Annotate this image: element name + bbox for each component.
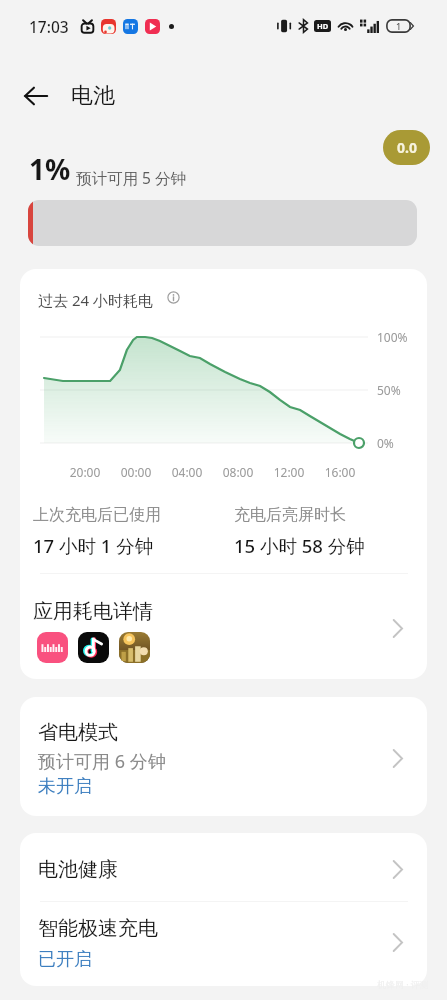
staticText: 应用耗电详情 — [33, 599, 153, 624]
staticText: 15 小时 58 分钟 — [234, 533, 365, 558]
staticText: 已开启 — [38, 948, 92, 971]
staticText: 04:00 — [167, 464, 207, 480]
staticText: 电池 — [71, 82, 115, 110]
staticText: 20:00 — [65, 464, 105, 480]
staticText: 17:03 — [29, 16, 69, 37]
staticText: 50% — [377, 382, 401, 398]
staticText: 12:00 — [269, 464, 309, 480]
staticText: 充电后亮屏时长 — [234, 505, 346, 525]
staticText: 机锋网 · 评测 — [377, 978, 430, 990]
staticText: 00:00 — [116, 464, 156, 480]
staticText: 17 小时 1 分钟 — [33, 533, 154, 558]
staticText: 0% — [377, 435, 394, 451]
staticText: 100% — [377, 329, 408, 345]
staticText: 智能极速充电 — [38, 916, 158, 941]
button[interactable]: 省电模式 — [20, 697, 427, 816]
staticText: 电池健康 — [38, 857, 118, 882]
staticText: 16:00 — [320, 464, 360, 480]
staticText: 省电模式 — [38, 720, 118, 745]
button[interactable]: 电池健康 — [20, 833, 427, 902]
staticText: 08:00 — [218, 464, 258, 480]
button[interactable]: 应用耗电详情 — [20, 574, 427, 679]
staticText: 未开启 — [38, 775, 92, 798]
staticText: 预计可用 5 分钟 — [76, 167, 186, 188]
staticText: HD — [317, 21, 329, 31]
button[interactable]: 0.0 — [383, 130, 430, 165]
staticText: 0.0 — [397, 138, 417, 157]
staticText: 预计可用 6 分钟 — [38, 749, 166, 774]
staticText: 1 — [396, 20, 402, 32]
button[interactable]: Back — [14, 74, 58, 118]
button[interactable]: 智能极速充电 — [20, 902, 427, 986]
staticText: 过去 24 小时耗电 — [38, 290, 153, 310]
staticText: 1% — [29, 150, 71, 188]
staticText: 上次充电后已使用 — [33, 505, 161, 525]
